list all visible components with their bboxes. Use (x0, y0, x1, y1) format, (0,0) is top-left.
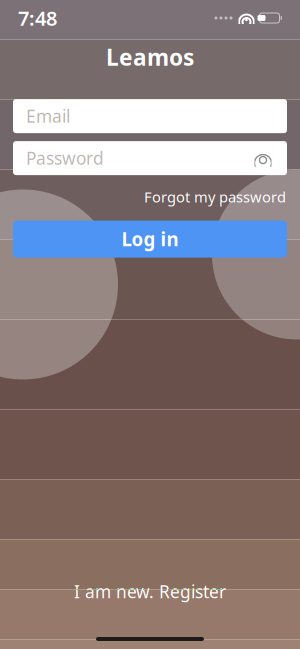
staticText: Leamos (106, 42, 194, 72)
button[interactable]: Log in (13, 221, 287, 258)
staticText: I am new. Register (74, 580, 226, 603)
button[interactable]: I am new. Register (74, 580, 226, 603)
staticText: Password (26, 147, 104, 170)
staticText: Log in (121, 227, 178, 251)
staticText: Email (26, 105, 70, 128)
staticText: 7:48 (18, 5, 57, 31)
button[interactable]: Forgot my password (144, 187, 286, 207)
button[interactable]: Show password (252, 151, 274, 165)
staticText: Forgot my password (144, 187, 286, 207)
